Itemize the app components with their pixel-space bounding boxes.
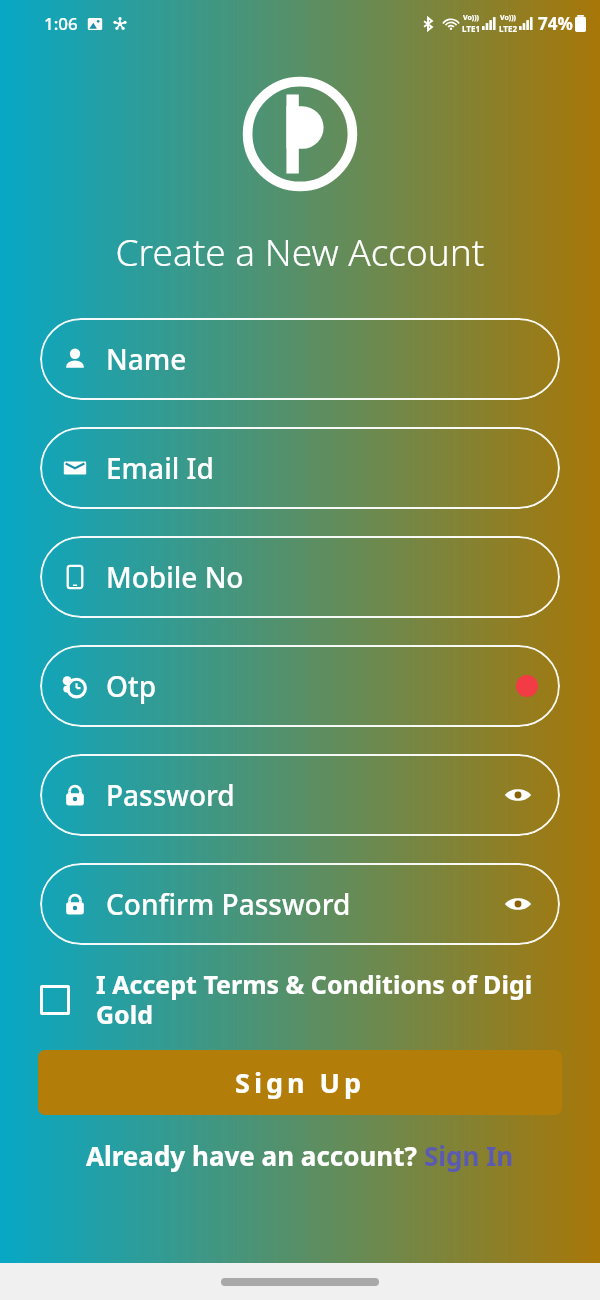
button[interactable]: Name [40, 318, 560, 400]
staticText: Password [106, 776, 235, 814]
staticText: LTE2 [499, 23, 517, 34]
staticText: Mobile No [106, 558, 244, 596]
staticText: Create a New Account [0, 226, 600, 276]
staticText: LTE1 [462, 23, 480, 34]
other: Accept terms checkbox [40, 985, 70, 1015]
button[interactable]: OTP timer [516, 675, 538, 697]
staticText: I Accept Terms & Conditions of Digi Gold [96, 967, 560, 1032]
button[interactable]: Confirm Password [40, 863, 560, 945]
button[interactable]: Otp [40, 645, 560, 727]
staticText: Vo))) [463, 13, 479, 23]
button[interactable]: Email Id [40, 427, 560, 509]
staticText: Name [106, 340, 187, 378]
staticText: Already have an account? [86, 1138, 424, 1173]
button[interactable]: Sign In [424, 1138, 514, 1173]
button[interactable]: Password [40, 754, 560, 836]
staticText: Otp [106, 667, 157, 705]
staticText: Confirm Password [106, 885, 351, 923]
button[interactable]: Mobile No [40, 536, 560, 618]
button[interactable]: Accept terms checkbox [40, 967, 560, 1032]
staticText: Sign In [424, 1138, 514, 1173]
staticText: Sign Up [235, 1064, 366, 1101]
staticText: 1:06 [44, 12, 78, 35]
button[interactable]: Toggle password visibility [498, 884, 538, 924]
button[interactable]: Sign Up [38, 1050, 562, 1115]
staticText: 74% [538, 12, 573, 35]
staticText: Email Id [106, 449, 214, 487]
button[interactable]: Toggle password visibility [498, 775, 538, 815]
staticText: Vo))) [500, 13, 516, 23]
